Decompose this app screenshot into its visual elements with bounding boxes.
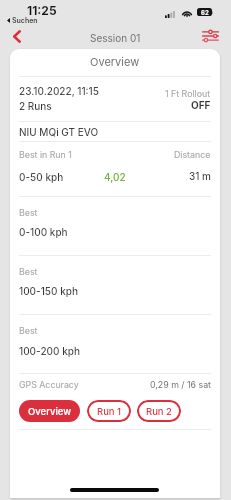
- button[interactable]: [10, 315, 220, 373]
- button[interactable]: [10, 122, 220, 141]
- staticText: Run 1: [97, 406, 122, 417]
- staticText: 0-50 kph: [19, 171, 64, 183]
- staticText: Best: [19, 207, 38, 218]
- button[interactable]: Back: [5, 26, 29, 46]
- staticText: 62: [201, 9, 209, 16]
- staticText: 0,29 m / 16 sat: [150, 379, 211, 390]
- staticText: Best: [19, 266, 38, 277]
- button[interactable]: [10, 142, 220, 196]
- button[interactable]: Filter settings: [197, 26, 223, 46]
- button[interactable]: [10, 77, 220, 120]
- staticText: 2 Runs: [19, 100, 52, 112]
- staticText: 100-150 kph: [19, 285, 78, 297]
- staticText: Best: [19, 325, 38, 336]
- staticText: Overview: [90, 55, 140, 68]
- staticText: NIU MQi GT EVO: [19, 126, 99, 138]
- staticText: GPS Accuracy: [19, 379, 79, 390]
- staticText: 31 m: [189, 170, 211, 182]
- staticText: OFF: [191, 99, 211, 111]
- staticText: Distance: [174, 149, 211, 160]
- staticText: Run 2: [146, 406, 172, 417]
- button[interactable]: [10, 197, 220, 255]
- button[interactable]: Run 2: [137, 400, 181, 422]
- staticText: Suchen: [12, 16, 38, 24]
- staticText: Overview: [28, 406, 72, 417]
- staticText: Session 01: [90, 32, 141, 44]
- staticText: 1 Ft Rollout: [165, 88, 211, 99]
- button[interactable]: Overview: [19, 400, 80, 422]
- staticText: 4,02: [104, 171, 126, 183]
- staticText: 23.10.2022, 11:15: [19, 85, 99, 97]
- button[interactable]: [10, 256, 220, 314]
- staticText: 100-200 kph: [19, 345, 80, 357]
- staticText: 11:25: [27, 3, 57, 18]
- staticText: Best in Run 1: [19, 149, 72, 160]
- staticText: 0-100 kph: [19, 226, 68, 238]
- button[interactable]: Run 1: [87, 400, 131, 422]
